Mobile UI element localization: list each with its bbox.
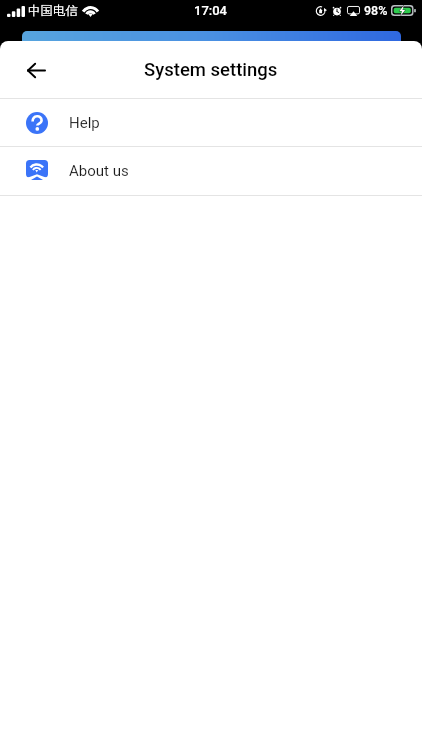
staticText: System settings (144, 59, 278, 81)
staticText: 中国电信 (28, 3, 78, 19)
staticText: 17:04 (194, 3, 228, 18)
button[interactable]: About us (0, 147, 422, 195)
staticText: About us (69, 162, 129, 180)
staticText: Help (69, 114, 100, 132)
button[interactable]: Help (0, 99, 422, 146)
staticText: 98% (364, 3, 388, 18)
button[interactable]: Back (14, 48, 58, 92)
